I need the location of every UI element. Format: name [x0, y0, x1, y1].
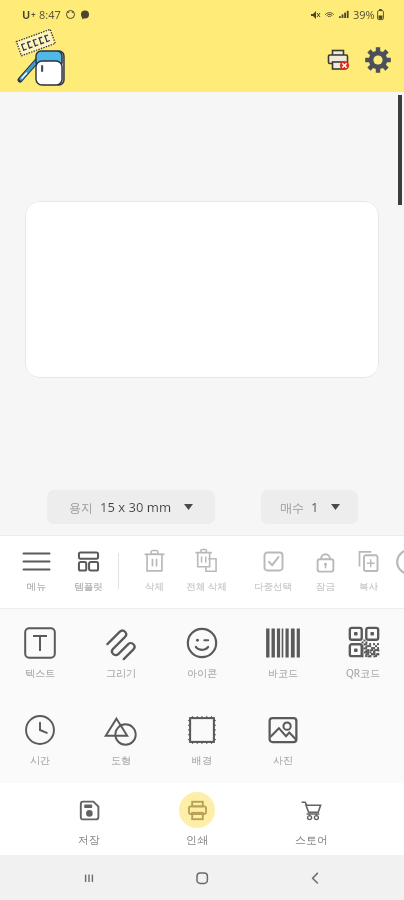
- staticText: +: [31, 9, 36, 20]
- button[interactable]: 저장: [53, 783, 125, 855]
- staticText: 용지: [69, 500, 93, 515]
- staticText: 전체 삭제: [186, 580, 227, 593]
- staticText: 메뉴: [27, 581, 46, 593]
- staticText: 바코드: [268, 667, 298, 680]
- button[interactable]: 템플릿: [58, 535, 118, 608]
- staticText: 15 x 30 mm: [100, 498, 172, 516]
- button[interactable]: 전체 삭제: [176, 535, 236, 608]
- button[interactable]: 그리기: [80, 609, 161, 696]
- staticText: QR코드: [346, 666, 381, 680]
- button[interactable]: 메뉴: [6, 535, 66, 608]
- staticText: 저장: [78, 833, 100, 847]
- staticText: 그리기: [106, 667, 136, 680]
- button[interactable]: 매수: [261, 490, 358, 524]
- button[interactable]: Home: [180, 855, 224, 900]
- button[interactable]: 아이콘: [161, 609, 242, 696]
- staticText: 배경: [192, 754, 212, 767]
- staticText: 시간: [30, 754, 50, 767]
- button[interactable]: More: [396, 549, 404, 575]
- button[interactable]: 사진: [242, 696, 323, 783]
- staticText: 다중선택: [254, 581, 292, 593]
- staticText: 사진: [273, 754, 293, 767]
- button[interactable]: [25, 201, 379, 378]
- staticText: 인쇄: [186, 833, 208, 847]
- staticText: 삭제: [145, 581, 164, 593]
- staticText: 아이콘: [187, 667, 217, 680]
- button[interactable]: 용지: [47, 490, 215, 524]
- staticText: 스토어: [295, 833, 328, 847]
- button[interactable]: 인쇄: [161, 783, 233, 855]
- button[interactable]: Printer not connected: [320, 28, 356, 92]
- button[interactable]: 시간: [0, 696, 80, 783]
- button[interactable]: Back: [293, 855, 337, 900]
- button[interactable]: 다중선택: [243, 535, 303, 608]
- staticText: 매수: [280, 500, 304, 515]
- button[interactable]: 스토어: [275, 783, 347, 855]
- staticText: 39%: [353, 7, 375, 22]
- staticText: 템플릿: [74, 581, 103, 593]
- button[interactable]: Settings: [360, 28, 396, 92]
- staticText: 복사: [359, 581, 378, 593]
- staticText: 잠금: [316, 581, 335, 593]
- button[interactable]: 텍스트: [0, 609, 80, 696]
- staticText: U: [22, 7, 31, 22]
- button[interactable]: 삭제: [124, 535, 184, 608]
- staticText: 도형: [111, 754, 131, 767]
- staticText: 8:47: [39, 7, 61, 22]
- button[interactable]: Recents: [67, 855, 111, 900]
- button[interactable]: STICH: [14, 33, 72, 89]
- staticText: 1: [311, 498, 319, 516]
- button[interactable]: 도형: [80, 696, 161, 783]
- button[interactable]: 바코드: [242, 609, 323, 696]
- button[interactable]: QR코드: [323, 609, 404, 696]
- staticText: 텍스트: [25, 667, 55, 680]
- button[interactable]: 잠금: [295, 535, 355, 608]
- button[interactable]: 복사: [338, 535, 398, 608]
- button[interactable]: 배경: [161, 696, 242, 783]
